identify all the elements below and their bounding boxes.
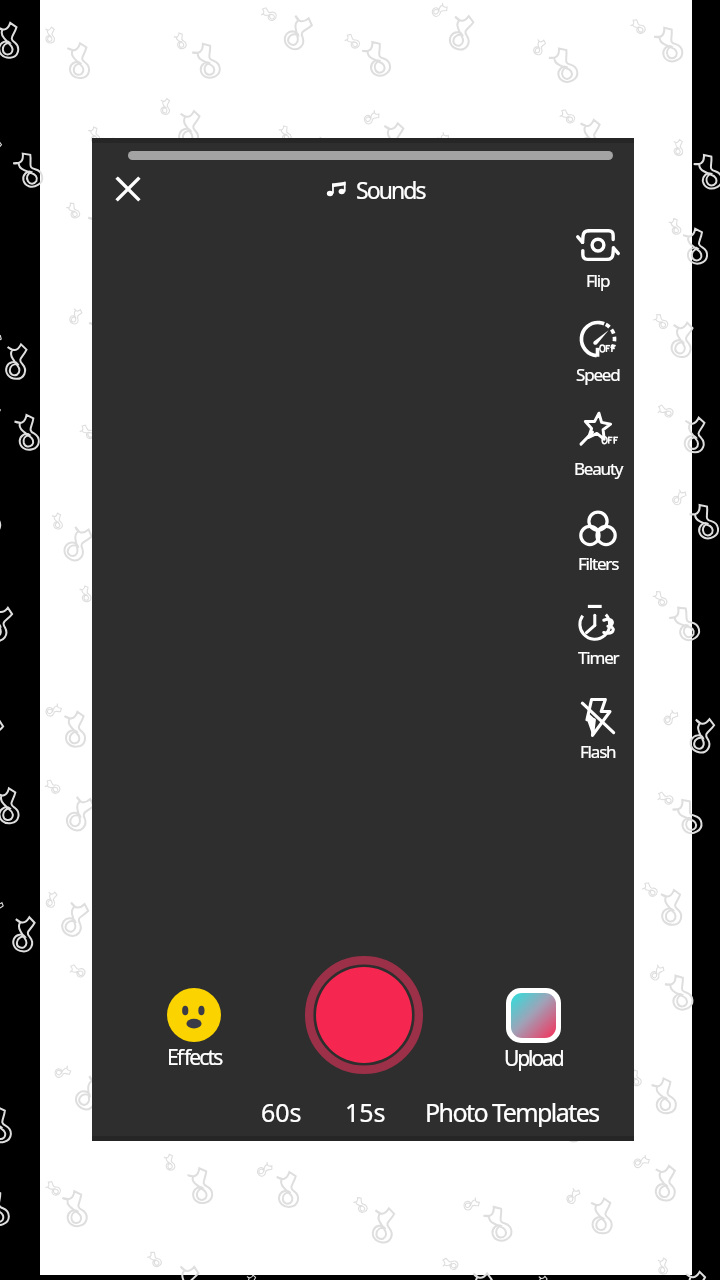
staticText: Filters: [578, 552, 619, 575]
button[interactable]: Timer: [563, 600, 633, 669]
button[interactable]: Speed: [563, 317, 633, 386]
button[interactable]: Effects: [154, 988, 234, 1072]
button[interactable]: Record: [305, 956, 423, 1074]
button[interactable]: Photo Templates: [412, 1095, 612, 1127]
button[interactable]: Flash: [563, 694, 633, 763]
button[interactable]: Beauty: [563, 411, 633, 480]
staticText: 60s: [261, 1095, 302, 1127]
staticText: Upload: [504, 1044, 563, 1073]
button[interactable]: Filters: [563, 506, 633, 575]
button[interactable]: Flip: [563, 223, 633, 292]
staticText: Sounds: [356, 174, 425, 205]
staticText: Flash: [580, 740, 616, 763]
button[interactable]: 15s: [265, 1095, 465, 1127]
staticText: 15s: [345, 1095, 386, 1127]
staticText: Photo Templates: [425, 1095, 599, 1127]
staticText: Timer: [578, 646, 619, 669]
button[interactable]: Close: [113, 174, 143, 204]
button[interactable]: Sounds: [326, 172, 425, 206]
staticText: Beauty: [574, 457, 623, 480]
button[interactable]: 60s: [181, 1095, 381, 1127]
staticText: Speed: [576, 363, 620, 386]
staticText: Effects: [167, 1043, 222, 1072]
staticText: Flip: [586, 269, 610, 292]
button[interactable]: Upload: [493, 988, 573, 1073]
